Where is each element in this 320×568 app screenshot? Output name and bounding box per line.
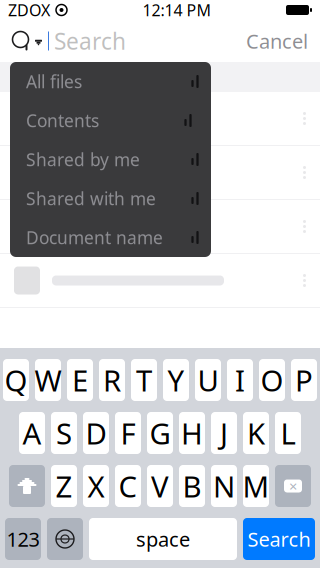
- staticText: D: [85, 413, 106, 452]
- button[interactable]: Contents: [10, 101, 211, 140]
- button[interactable]: Q: [3, 359, 29, 401]
- button[interactable]: Delete: [275, 465, 311, 507]
- button[interactable]: L: [275, 412, 301, 454]
- staticText: H: [181, 413, 203, 452]
- button[interactable]: Search: [243, 518, 315, 560]
- button[interactable]: B: [179, 465, 205, 507]
- button[interactable]: X: [83, 465, 109, 507]
- button[interactable]: T: [131, 359, 157, 401]
- staticText: Contents: [26, 109, 99, 132]
- staticText: E: [72, 360, 88, 399]
- staticText: B: [182, 466, 201, 505]
- button[interactable]: E: [67, 359, 93, 401]
- staticText: Shared by me: [26, 148, 140, 171]
- staticText: N: [213, 466, 235, 505]
- staticText: P: [295, 360, 313, 399]
- staticText: All files: [26, 70, 82, 93]
- staticText: F: [120, 413, 135, 452]
- staticText: Y: [167, 360, 184, 399]
- staticText: W: [34, 360, 61, 399]
- button[interactable]: Document name: [10, 218, 211, 257]
- button[interactable]: Shared with me: [10, 179, 211, 218]
- staticText: ×: [289, 476, 297, 496]
- staticText: K: [247, 413, 265, 452]
- staticText: L: [280, 413, 295, 452]
- button[interactable]: Z: [51, 465, 77, 507]
- staticText: R: [103, 360, 121, 399]
- staticText: Cancel: [246, 28, 308, 54]
- button[interactable]: N: [211, 465, 237, 507]
- button[interactable]: W: [35, 359, 61, 401]
- button[interactable]: J: [211, 412, 237, 454]
- staticText: ZDOX: [8, 0, 50, 21]
- button[interactable]: U: [195, 359, 221, 401]
- button[interactable]: Search scope: [0, 20, 48, 62]
- button[interactable]: D: [83, 412, 109, 454]
- staticText: Shared with me: [26, 187, 156, 210]
- staticText: space: [136, 526, 190, 552]
- staticText: A: [22, 413, 41, 452]
- staticText: Document name: [26, 226, 163, 249]
- staticText: C: [118, 466, 137, 505]
- staticText: O: [260, 360, 283, 399]
- button[interactable]: I: [227, 359, 253, 401]
- button[interactable]: Shared by me: [10, 140, 211, 179]
- button[interactable]: F: [115, 412, 141, 454]
- button[interactable]: V: [147, 465, 173, 507]
- staticText: Search: [247, 526, 310, 552]
- button[interactable]: Y: [163, 359, 189, 401]
- button[interactable]: K: [243, 412, 269, 454]
- staticText: X: [87, 466, 104, 505]
- staticText: G: [149, 413, 170, 452]
- button[interactable]: P: [291, 359, 317, 401]
- button[interactable]: H: [179, 412, 205, 454]
- button[interactable]: R: [99, 359, 125, 401]
- staticText: V: [151, 466, 169, 505]
- button[interactable]: G: [147, 412, 173, 454]
- button[interactable]: Shift: [9, 465, 45, 507]
- staticText: M: [242, 466, 269, 505]
- staticText: 12:14 PM: [142, 0, 211, 21]
- button[interactable]: A: [19, 412, 45, 454]
- button[interactable]: Cancel: [234, 20, 320, 62]
- staticText: Q: [4, 360, 27, 399]
- button[interactable]: Next keyboard: [47, 518, 83, 560]
- button[interactable]: S: [51, 412, 77, 454]
- staticText: Z: [55, 466, 72, 505]
- button[interactable]: 123: [5, 518, 41, 560]
- button[interactable]: space: [89, 518, 237, 560]
- staticText: J: [220, 413, 228, 452]
- staticText: Search: [54, 26, 126, 56]
- staticText: U: [197, 360, 218, 399]
- button[interactable]: O: [259, 359, 285, 401]
- staticText: T: [136, 360, 152, 399]
- button[interactable]: C: [115, 465, 141, 507]
- staticText: 123: [6, 526, 39, 552]
- staticText: S: [56, 413, 72, 452]
- button[interactable]: Search: [48, 20, 234, 62]
- button[interactable]: M: [243, 465, 269, 507]
- button[interactable]: All files: [10, 62, 211, 101]
- staticText: I: [235, 360, 245, 399]
